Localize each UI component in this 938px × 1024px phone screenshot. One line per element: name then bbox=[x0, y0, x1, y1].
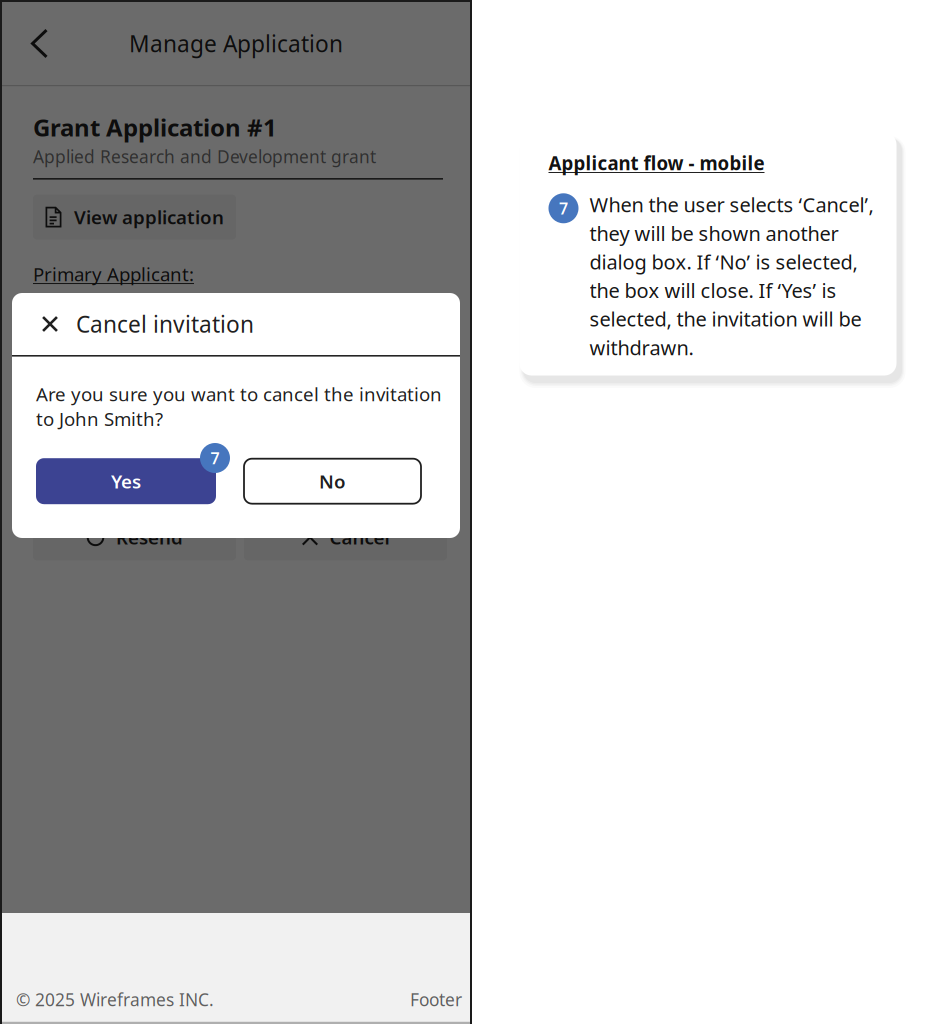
button[interactable]: Back bbox=[2, 12, 72, 74]
staticText: Are you sure you want to cancel the invi… bbox=[36, 382, 442, 431]
staticText: Yes bbox=[111, 469, 141, 494]
staticText: When the user selects ‘Cancel’, they wil… bbox=[589, 191, 873, 361]
staticText: No bbox=[319, 469, 346, 494]
button[interactable]: Cancel bbox=[244, 514, 447, 560]
staticText: Grant Application #1 bbox=[33, 111, 277, 143]
staticText: © 2025 Wireframes INC. bbox=[16, 988, 214, 1011]
staticText: Applied Research and Development grant bbox=[33, 145, 376, 168]
staticText: Cancel bbox=[329, 525, 389, 550]
staticText: View application bbox=[74, 205, 224, 229]
staticText: Resend bbox=[116, 525, 183, 550]
staticText: Manage Application bbox=[129, 28, 343, 58]
staticText: 7 bbox=[559, 198, 568, 219]
staticText: Cancel invitation bbox=[76, 309, 254, 339]
button[interactable]: View application bbox=[33, 195, 236, 240]
button[interactable]: No bbox=[244, 459, 421, 504]
staticText: Applicant flow - mobile bbox=[548, 150, 764, 175]
staticText: 7 bbox=[210, 447, 219, 469]
staticText: Primary Applicant: bbox=[33, 262, 194, 286]
staticText: Footer bbox=[410, 988, 462, 1011]
button[interactable]: Close bbox=[32, 306, 68, 342]
button[interactable]: Resend bbox=[33, 514, 236, 560]
button[interactable]: Yes bbox=[36, 458, 216, 504]
